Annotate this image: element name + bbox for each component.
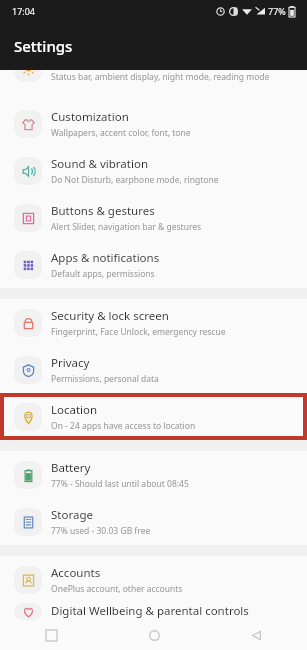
staticText: Sound & vibration [51, 156, 148, 172]
button[interactable]: Digital Wellbeing & parental controls [0, 603, 307, 620]
button[interactable]: Security & lock screen [0, 299, 307, 346]
button[interactable]: Customization [0, 100, 307, 147]
staticText: Accounts [51, 565, 101, 581]
staticText: Default apps, permissions [51, 268, 155, 280]
staticText: 17:04 [12, 5, 36, 17]
button[interactable]: Battery [0, 451, 307, 498]
button[interactable]: Sound & vibration [0, 147, 307, 194]
button[interactable]: Accounts [0, 556, 307, 603]
button[interactable]: Back [205, 620, 307, 650]
staticText: 77% [268, 5, 286, 17]
staticText: Wallpapers, accent color, font, tone [51, 127, 191, 139]
staticText: Security & lock screen [51, 308, 169, 324]
staticText: Settings [14, 36, 73, 56]
staticText: 77% used - 30.03 GB free [51, 525, 151, 537]
button[interactable]: Home [103, 620, 205, 650]
staticText: Customization [51, 109, 129, 125]
button[interactable]: Privacy [0, 346, 307, 393]
staticText: On - 24 apps have access to location [51, 420, 196, 432]
button[interactable]: Apps & notifications [0, 241, 307, 288]
staticText: Do Not Disturb, earphone mode, ringtone [51, 174, 219, 186]
staticText: Buttons & gestures [51, 203, 155, 219]
staticText: Location [51, 402, 98, 418]
staticText: Fingerprint, Face Unlock, emergency resc… [51, 326, 226, 338]
button[interactable]: Recent apps [0, 620, 103, 650]
staticText: 77% - Should last until about 08:45 [51, 478, 189, 490]
staticText: OnePlus account, other accounts [51, 583, 183, 595]
staticText: Permissions, personal data [51, 373, 159, 385]
button[interactable]: Buttons & gestures [0, 194, 307, 241]
staticText: Privacy [51, 355, 90, 371]
staticText: Digital Wellbeing & parental controls [51, 603, 249, 619]
staticText: Battery [51, 460, 91, 476]
button[interactable]: Display [0, 70, 307, 83]
staticText: Apps & notifications [51, 250, 160, 266]
button[interactable]: Location [0, 393, 307, 440]
button[interactable]: Storage [0, 498, 307, 545]
staticText: Alert Slider, navigation bar & gestures [51, 221, 202, 233]
staticText: Status bar, ambient display, night mode,… [51, 71, 270, 83]
staticText: Storage [51, 507, 93, 523]
